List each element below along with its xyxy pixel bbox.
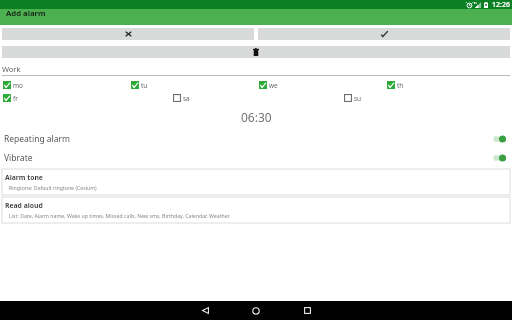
button[interactable]: tu <box>128 81 256 89</box>
staticText: su <box>354 94 362 102</box>
staticText: mo <box>13 81 24 89</box>
button[interactable]: fr <box>0 94 170 102</box>
staticText: Vibrate <box>4 152 33 164</box>
staticText: List: Date, Alarm name, Wake up times, M… <box>9 212 230 219</box>
button[interactable]: su <box>341 94 512 102</box>
staticText: we <box>269 81 278 89</box>
button[interactable]: Vibrate <box>0 151 512 164</box>
staticText: th <box>397 81 404 89</box>
button[interactable]: Repeating alarm <box>0 132 512 145</box>
button[interactable]: Read aloud <box>2 197 510 223</box>
button[interactable]: Alarm tone <box>2 169 510 195</box>
staticText: Add alarm <box>6 8 46 18</box>
staticText: fr <box>13 94 18 102</box>
staticText: sa <box>183 94 190 102</box>
staticText: Ringtone: Default ringtone (Cesium) <box>9 184 97 191</box>
staticText: 06:30 <box>241 109 272 125</box>
button[interactable]: mo <box>0 81 128 89</box>
staticText: tu <box>141 81 148 89</box>
button[interactable]: sa <box>170 94 341 102</box>
staticText: Alarm tone <box>5 173 43 182</box>
button[interactable]: Save <box>258 28 510 40</box>
button[interactable]: Home <box>246 301 266 320</box>
staticText: Read aloud <box>5 201 43 210</box>
button[interactable]: Delete alarm <box>2 46 510 58</box>
staticText: Work <box>2 64 21 74</box>
staticText: 12:26 <box>492 0 510 9</box>
button[interactable]: Back <box>195 301 215 320</box>
button[interactable]: Cancel <box>2 28 254 40</box>
button[interactable]: th <box>384 81 512 89</box>
staticText: Repeating alarm <box>4 133 71 145</box>
button[interactable]: we <box>256 81 384 89</box>
button[interactable]: Recents <box>297 301 317 320</box>
